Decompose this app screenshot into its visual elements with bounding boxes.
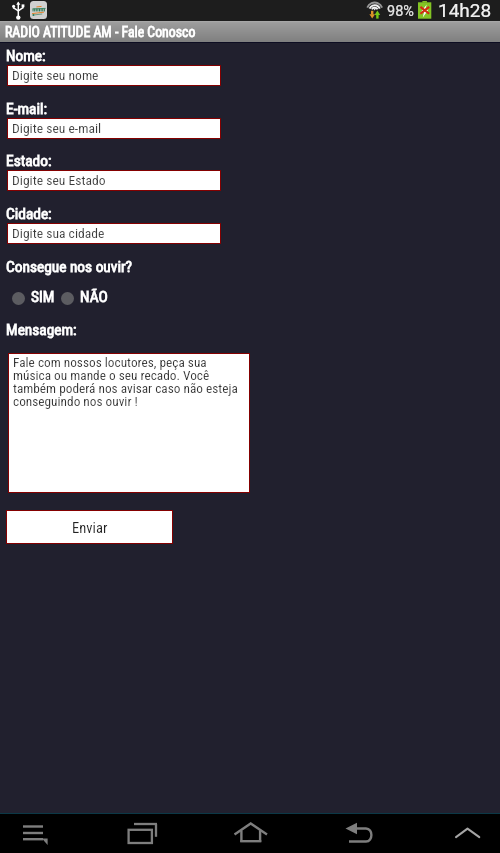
button[interactable]: Enviar: [6, 510, 173, 544]
button[interactable]: Digite seu nome: [7, 65, 221, 86]
staticText: Digite seu e-mail: [12, 120, 102, 136]
button[interactable]: NÃO: [56, 285, 114, 311]
staticText: 14h28: [438, 0, 492, 20]
staticText: E-mail:: [6, 100, 48, 118]
staticText: Mensagem:: [6, 321, 77, 339]
button[interactable]: Digite seu e-mail: [7, 118, 221, 139]
staticText: Estado:: [6, 152, 52, 170]
button[interactable]: Recent apps: [100, 814, 205, 853]
button[interactable]: Digite seu Estado: [7, 170, 221, 191]
button[interactable]: Hide navigation: [410, 814, 500, 853]
button[interactable]: Menu: [0, 814, 100, 853]
staticText: Enviar: [72, 519, 108, 536]
staticText: Fale com nossos locutores, peça sua músi…: [13, 355, 244, 410]
button[interactable]: Home: [205, 814, 305, 853]
staticText: Digite seu nome: [12, 67, 99, 83]
staticText: Consegue nos ouvir?: [6, 258, 133, 276]
button[interactable]: Digite sua cidade: [7, 223, 221, 244]
button[interactable]: RADIO ATITUDE AM - Fale Conosco: [0, 21, 500, 42]
staticText: Cidade:: [6, 205, 52, 223]
staticText: Nome:: [6, 47, 46, 65]
staticText: RADIO ATITUDE AM - Fale Conosco: [5, 24, 196, 40]
button[interactable]: Fale com nossos locutores, peça sua músi…: [8, 353, 250, 493]
staticText: Digite sua cidade: [12, 225, 105, 241]
button[interactable]: Back: [305, 814, 410, 853]
staticText: 98%: [387, 3, 414, 20]
button[interactable]: SIM: [7, 285, 61, 311]
staticText: NÃO: [80, 288, 108, 306]
staticText: Digite seu Estado: [12, 172, 106, 188]
staticText: SIM: [31, 288, 55, 306]
